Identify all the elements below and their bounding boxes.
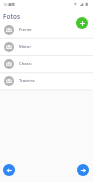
button[interactable]: Traseira — [0, 72, 93, 89]
staticText: 10:43 — [3, 2, 13, 7]
staticText: Traseira — [19, 78, 35, 84]
staticText: Motor — [19, 44, 32, 50]
button[interactable]: Adicionar foto — [76, 17, 88, 29]
button[interactable]: Avancar — [77, 164, 89, 176]
button[interactable]: Motor — [0, 38, 93, 55]
button[interactable]: Chassi — [0, 55, 93, 72]
staticText: Chassi — [19, 61, 32, 67]
staticText: Fotos — [3, 12, 21, 21]
button[interactable]: Voltar — [3, 164, 15, 176]
staticText: Frente — [19, 27, 32, 33]
button[interactable]: Frente — [0, 21, 93, 38]
